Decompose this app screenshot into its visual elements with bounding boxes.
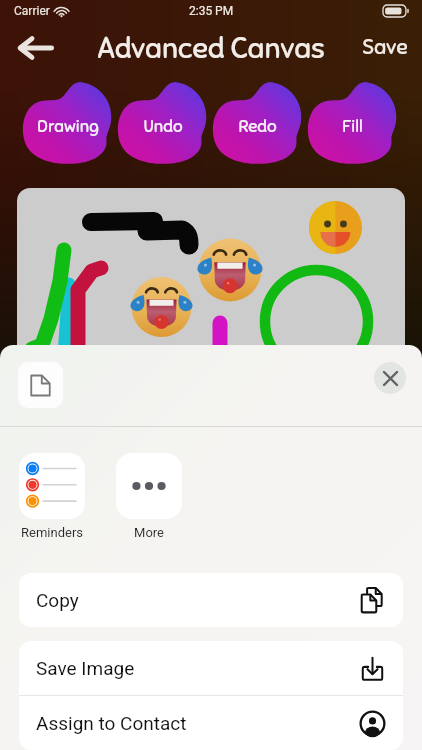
button[interactable]: Fill (305, 82, 400, 164)
staticText: More (134, 525, 164, 540)
button[interactable]: Save Image (19, 641, 403, 695)
button[interactable]: Back (10, 22, 60, 74)
button[interactable] (18, 362, 63, 408)
button[interactable]: Copy (19, 573, 403, 627)
button[interactable]: Close (374, 362, 406, 394)
staticText: 2:35 PM (189, 4, 234, 18)
staticText: Redo (238, 116, 277, 137)
staticText: Fill (342, 116, 363, 137)
button[interactable]: Assign to Contact (19, 696, 403, 750)
button[interactable]: Reminders (19, 453, 85, 540)
staticText: Copy (36, 589, 79, 611)
staticText: Save Image (36, 657, 135, 679)
staticText: Reminders (21, 525, 83, 540)
button[interactable]: Drawing (20, 82, 115, 164)
staticText: Drawing (37, 116, 99, 137)
staticText: Carrier (14, 4, 50, 18)
button[interactable]: Undo (115, 82, 210, 164)
staticText: Save (362, 34, 408, 60)
button[interactable]: Redo (210, 82, 305, 164)
button[interactable]: More (116, 453, 182, 540)
staticText: Assign to Contact (36, 712, 187, 734)
button[interactable]: Save (356, 30, 414, 64)
staticText: Undo (143, 116, 183, 137)
staticText: Advanced Canvas (97, 30, 325, 66)
